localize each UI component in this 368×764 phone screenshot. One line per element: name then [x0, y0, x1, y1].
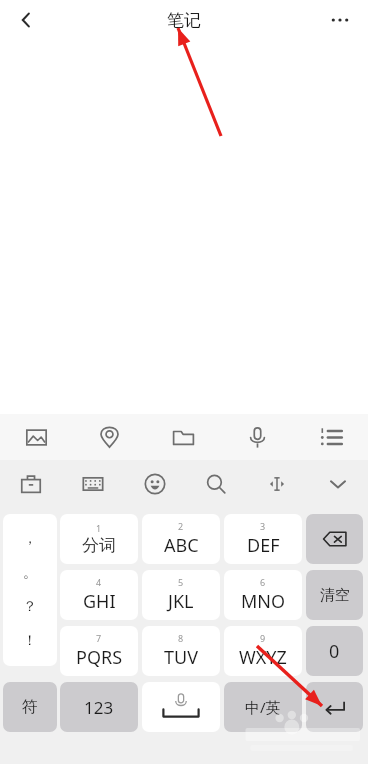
- button[interactable]: 4: [60, 570, 138, 620]
- staticText: 5: [178, 576, 184, 588]
- staticText: 笔记: [167, 10, 201, 31]
- staticText: 0: [329, 639, 340, 664]
- button[interactable]: 9: [224, 626, 302, 676]
- button[interactable]: 6: [224, 570, 302, 620]
- button[interactable]: 123: [60, 682, 138, 732]
- staticText: ！: [23, 632, 37, 650]
- button[interactable]: 0: [306, 626, 363, 676]
- staticText: ？: [23, 598, 37, 616]
- staticText: ABC: [164, 533, 199, 558]
- button[interactable]: Insert image: [0, 414, 73, 460]
- staticText: 分词: [82, 535, 116, 556]
- staticText: WXYZ: [239, 645, 287, 670]
- button[interactable]: Back: [6, 0, 46, 40]
- button[interactable]: [306, 514, 363, 564]
- button[interactable]: Folder: [146, 414, 220, 460]
- button[interactable]: ，: [3, 514, 57, 666]
- staticText: 4: [96, 576, 102, 588]
- staticText: 符: [22, 697, 38, 717]
- button[interactable]: 2: [142, 514, 220, 564]
- button[interactable]: Hide keyboard: [307, 460, 368, 508]
- staticText: JKL: [168, 589, 194, 614]
- staticText: 清空: [320, 586, 350, 605]
- button[interactable]: Voice: [220, 414, 294, 460]
- button[interactable]: 8: [142, 626, 220, 676]
- staticText: 123: [84, 696, 114, 719]
- button[interactable]: Keyboard layout: [62, 460, 124, 508]
- button[interactable]: Search: [185, 460, 246, 508]
- button[interactable]: 7: [60, 626, 138, 676]
- button[interactable]: [306, 682, 363, 732]
- staticText: 9: [260, 632, 266, 644]
- staticText: 1: [96, 522, 102, 534]
- staticText: 中/英: [245, 697, 281, 717]
- staticText: 。: [23, 564, 37, 582]
- staticText: MNO: [241, 589, 286, 614]
- staticText: 3: [260, 520, 266, 532]
- button[interactable]: Clipboard: [0, 460, 62, 508]
- staticText: TUV: [164, 645, 198, 670]
- button[interactable]: 中/英: [224, 682, 302, 732]
- button[interactable]: Emoji: [124, 460, 185, 508]
- staticText: 2: [178, 520, 184, 532]
- button[interactable]: More options: [320, 0, 360, 40]
- button[interactable]: Cursor: [246, 460, 307, 508]
- button[interactable]: 5: [142, 570, 220, 620]
- staticText: 6: [260, 576, 266, 588]
- button[interactable]: 清空: [306, 570, 363, 620]
- button[interactable]: 3: [224, 514, 302, 564]
- button[interactable]: 1: [60, 514, 138, 564]
- staticText: GHI: [83, 589, 116, 614]
- staticText: 8: [178, 632, 184, 644]
- staticText: ，: [23, 530, 37, 548]
- button[interactable]: Location: [73, 414, 146, 460]
- staticText: DEF: [247, 533, 280, 558]
- button[interactable]: Checklist: [294, 414, 368, 460]
- button[interactable]: 符: [3, 682, 57, 732]
- staticText: 7: [96, 632, 102, 644]
- staticText: PQRS: [76, 645, 123, 670]
- button[interactable]: [142, 682, 220, 732]
